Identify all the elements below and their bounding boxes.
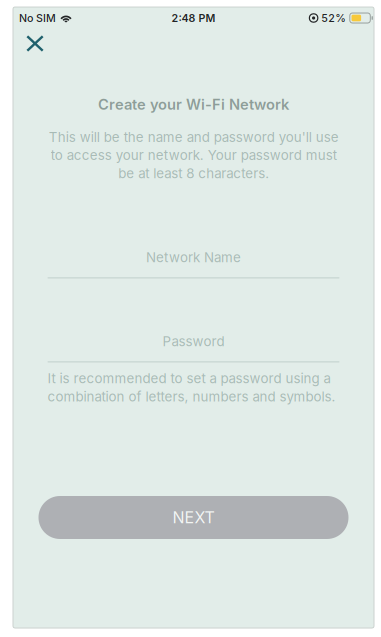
button[interactable]: Close — [13, 29, 60, 61]
staticText: It is recommended to set a password usin… — [47, 370, 335, 405]
staticText: NEXT — [172, 508, 214, 527]
staticText: Password — [162, 333, 224, 349]
staticText: 2:48 PM — [171, 11, 215, 24]
staticText: 52% — [321, 11, 346, 24]
staticText: Network Name — [146, 249, 241, 265]
button[interactable]: NEXT — [38, 496, 348, 539]
staticText: This will be the name and password you'l… — [48, 129, 338, 181]
staticText: No SIM — [19, 11, 56, 24]
staticText: Create your Wi-Fi Network — [98, 96, 289, 113]
